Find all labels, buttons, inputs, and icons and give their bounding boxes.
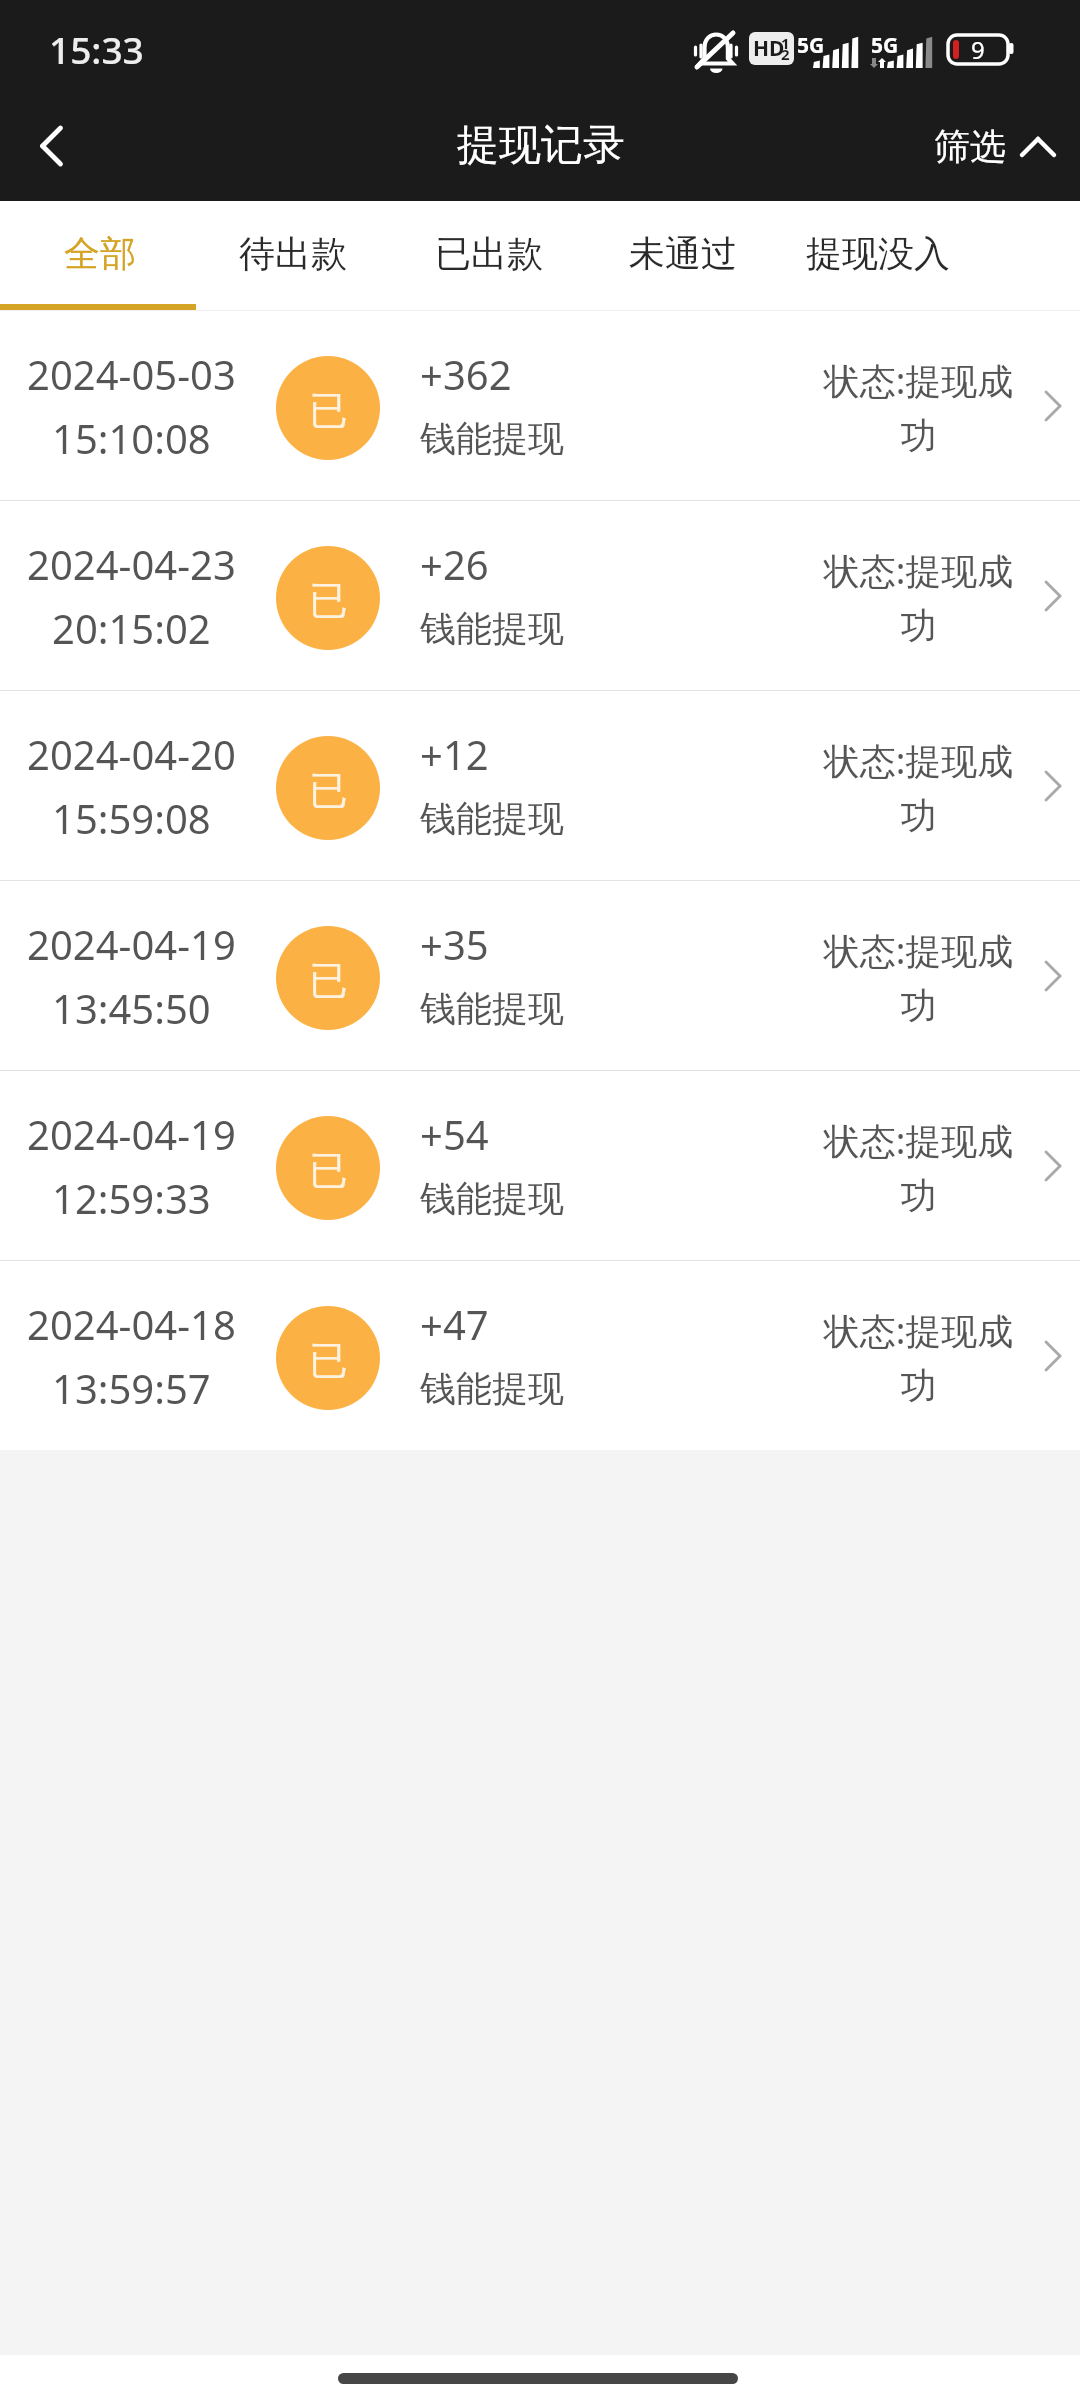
- button[interactable]: Back: [0, 96, 100, 196]
- staticText: 钱能提现: [420, 796, 564, 841]
- staticText: 状态:提现成功: [822, 1116, 1015, 1219]
- button[interactable]: 筛选: [914, 98, 1080, 195]
- staticText: 9: [971, 33, 985, 65]
- staticText: 2024-04-19: [27, 917, 236, 971]
- staticText: 状态:提现成功: [822, 546, 1015, 649]
- button[interactable]: 2024-05-03: [0, 311, 1080, 500]
- button[interactable]: 未通过: [586, 201, 779, 305]
- staticText: 13:45:50: [52, 981, 211, 1035]
- staticText: 已: [309, 1146, 348, 1195]
- staticText: 5G: [797, 31, 825, 60]
- staticText: 已出款: [435, 231, 543, 276]
- staticText: 钱能提现: [420, 986, 564, 1031]
- staticText: 已: [309, 576, 348, 625]
- staticText: 20:15:02: [52, 601, 211, 655]
- button[interactable]: 2024-04-19: [0, 1071, 1080, 1260]
- staticText: 5G: [871, 31, 899, 60]
- staticText: 15:10:08: [52, 411, 211, 465]
- staticText: 15:33: [49, 24, 144, 74]
- staticText: 已: [309, 386, 348, 435]
- staticText: 已: [309, 766, 348, 815]
- staticText: 状态:提现成功: [822, 926, 1015, 1029]
- button[interactable]: 提现没入: [781, 201, 974, 305]
- staticText: 状态:提现成功: [822, 1306, 1015, 1409]
- button[interactable]: 待出款: [196, 201, 389, 305]
- staticText: 15:59:08: [52, 791, 211, 845]
- staticText: 待出款: [239, 231, 347, 276]
- button[interactable]: 2024-04-18: [0, 1261, 1080, 1450]
- staticText: HD: [753, 34, 785, 63]
- staticText: +362: [420, 347, 512, 401]
- button[interactable]: 2024-04-20: [0, 691, 1080, 880]
- staticText: 12:59:33: [52, 1171, 211, 1225]
- staticText: 2024-04-20: [27, 727, 236, 781]
- staticText: 1: [781, 33, 790, 53]
- staticText: 2024-05-03: [27, 347, 236, 401]
- staticText: 状态:提现成功: [822, 356, 1015, 459]
- staticText: 钱能提现: [420, 1176, 564, 1221]
- staticText: 提现没入: [806, 231, 950, 276]
- staticText: 2024-04-19: [27, 1107, 236, 1161]
- staticText: +26: [420, 537, 489, 591]
- staticText: +54: [420, 1107, 489, 1161]
- staticText: 13:59:57: [52, 1361, 211, 1415]
- staticText: 已: [309, 956, 348, 1005]
- staticText: 钱能提现: [420, 606, 564, 651]
- staticText: 已: [309, 1336, 348, 1385]
- staticText: 全部: [64, 231, 136, 276]
- staticText: 2024-04-23: [27, 537, 236, 591]
- staticText: 筛选: [934, 124, 1006, 169]
- staticText: 2024-04-18: [27, 1297, 236, 1351]
- staticText: 钱能提现: [420, 416, 564, 461]
- staticText: +12: [420, 727, 489, 781]
- button[interactable]: 2024-04-23: [0, 501, 1080, 690]
- staticText: 2: [781, 44, 790, 64]
- button[interactable]: 2024-04-19: [0, 881, 1080, 1070]
- staticText: +47: [420, 1297, 489, 1351]
- button[interactable]: 已出款: [392, 201, 585, 305]
- staticText: +35: [420, 917, 489, 971]
- staticText: 钱能提现: [420, 1366, 564, 1411]
- staticText: 提现记录: [457, 119, 625, 172]
- button[interactable]: 全部: [3, 201, 196, 305]
- staticText: 状态:提现成功: [822, 736, 1015, 839]
- staticText: 未通过: [629, 231, 737, 276]
